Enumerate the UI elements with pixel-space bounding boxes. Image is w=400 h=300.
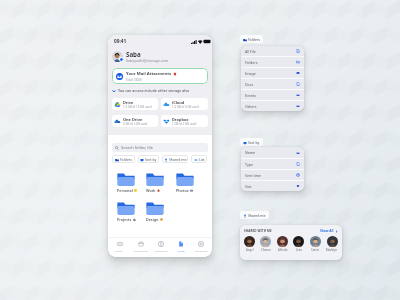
button[interactable]: Sort by bbox=[240, 138, 263, 146]
button[interactable]: Chance bbox=[260, 236, 271, 252]
staticText: List bbox=[199, 157, 205, 162]
button[interactable]: CALENDAR bbox=[130, 238, 151, 257]
staticText: Search folder, file bbox=[121, 145, 154, 150]
button[interactable]: Type bbox=[241, 159, 304, 169]
staticText: Your Mail Attacments bbox=[126, 71, 172, 77]
button[interactable]: Sort by bbox=[138, 155, 159, 163]
staticText: Sabapathi@storage.com bbox=[126, 58, 169, 63]
staticText: One Drive bbox=[123, 117, 143, 122]
button[interactable]: Photos bbox=[176, 172, 206, 193]
staticText: Design bbox=[146, 217, 159, 222]
staticText: Personal bbox=[117, 188, 133, 193]
staticText: 1.3 GB of 15 GB used bbox=[123, 105, 152, 109]
staticText: Folders bbox=[245, 60, 258, 65]
button[interactable]: Show All bbox=[320, 229, 338, 233]
button[interactable]: Design bbox=[146, 201, 176, 222]
staticText: Others bbox=[245, 104, 257, 109]
staticText: Photos bbox=[176, 188, 189, 193]
button[interactable]: Dropbox bbox=[161, 115, 208, 127]
staticText: Events bbox=[245, 93, 257, 98]
button[interactable]: Shared me bbox=[240, 211, 269, 219]
button[interactable]: Folders bbox=[240, 35, 263, 43]
button[interactable]: Shared me bbox=[162, 155, 188, 163]
button[interactable]: Folders bbox=[112, 155, 135, 163]
staticText: CALENDAR bbox=[134, 249, 148, 252]
staticText: Angel bbox=[246, 248, 254, 252]
button[interactable]: Docs bbox=[241, 79, 304, 89]
button[interactable]: Madelyn bbox=[326, 236, 338, 252]
staticText: Saba bbox=[126, 50, 141, 58]
button[interactable]: Events bbox=[241, 90, 304, 100]
staticText: 2 GB of 5 GB used bbox=[123, 122, 148, 126]
button[interactable]: Sent time bbox=[241, 170, 304, 180]
staticText: EMAIL bbox=[115, 249, 124, 252]
staticText: Docs bbox=[245, 82, 254, 87]
staticText: 09:41 bbox=[114, 38, 127, 45]
staticText: You can access include other storage als… bbox=[118, 88, 190, 93]
button[interactable]: Drive bbox=[112, 98, 158, 110]
staticText: Name bbox=[245, 150, 256, 155]
button[interactable]: One Drive bbox=[112, 115, 158, 127]
button[interactable]: Image bbox=[241, 68, 304, 78]
button[interactable]: EMAIL bbox=[109, 238, 130, 257]
button[interactable]: Projects bbox=[117, 201, 146, 222]
staticText: 1.2 GB of 5 GB used bbox=[172, 105, 199, 109]
staticText: Alfredo bbox=[278, 248, 288, 252]
staticText: SHARED WITH ME bbox=[244, 229, 272, 233]
staticText: Sort by bbox=[248, 140, 260, 145]
button[interactable]: Name bbox=[241, 147, 304, 158]
button[interactable]: Search folder, file bbox=[112, 143, 208, 152]
button[interactable]: Your Mail Attacments bbox=[112, 68, 208, 84]
staticText: Shared me bbox=[169, 157, 187, 162]
staticText: CONTACTS bbox=[154, 249, 168, 252]
staticText: Show All bbox=[320, 229, 334, 233]
button[interactable]: Folders bbox=[241, 57, 304, 67]
button[interactable]: Others bbox=[241, 101, 304, 111]
button[interactable]: iCloud bbox=[161, 98, 208, 110]
button[interactable]: Personal bbox=[117, 172, 146, 193]
button[interactable]: SETTINGS bbox=[191, 238, 211, 257]
staticText: Sort by bbox=[145, 157, 157, 162]
staticText: Folders bbox=[248, 37, 260, 42]
button[interactable]: Work bbox=[146, 172, 176, 193]
button[interactable]: All File bbox=[241, 46, 304, 56]
staticText: iCloud bbox=[172, 100, 185, 105]
staticText: Chance bbox=[261, 248, 271, 252]
staticText: Shared me bbox=[248, 213, 266, 218]
staticText: FILES bbox=[178, 249, 185, 252]
staticText: Projects bbox=[117, 217, 132, 222]
staticText: Work bbox=[146, 188, 156, 193]
button[interactable]: Livia bbox=[293, 236, 304, 252]
staticText: Drive bbox=[123, 100, 134, 105]
button[interactable]: FILES bbox=[171, 238, 191, 257]
button[interactable]: List bbox=[191, 155, 207, 163]
staticText: SETTINGS bbox=[195, 249, 208, 252]
staticText: Folders bbox=[120, 157, 132, 162]
staticText: Size bbox=[245, 184, 252, 189]
button[interactable]: Saba bbox=[112, 50, 208, 63]
staticText: Sent time bbox=[245, 173, 262, 178]
staticText: Type bbox=[245, 162, 253, 167]
staticText: Total 74GB bbox=[126, 78, 142, 82]
staticText: Image bbox=[245, 71, 256, 76]
button[interactable]: CONTACTS bbox=[151, 238, 171, 257]
staticText: Carter bbox=[311, 248, 320, 252]
staticText: Dropbox bbox=[172, 117, 189, 122]
staticText: Madelyn bbox=[326, 248, 338, 252]
button[interactable]: Size bbox=[241, 181, 304, 191]
staticText: Livia bbox=[296, 248, 302, 252]
button[interactable]: Alfredo bbox=[277, 236, 288, 252]
button[interactable]: Carter bbox=[310, 236, 321, 252]
button[interactable]: Angel bbox=[244, 236, 255, 252]
staticText: 1 GB of 2 GB used bbox=[172, 122, 197, 126]
staticText: All File bbox=[245, 49, 256, 54]
